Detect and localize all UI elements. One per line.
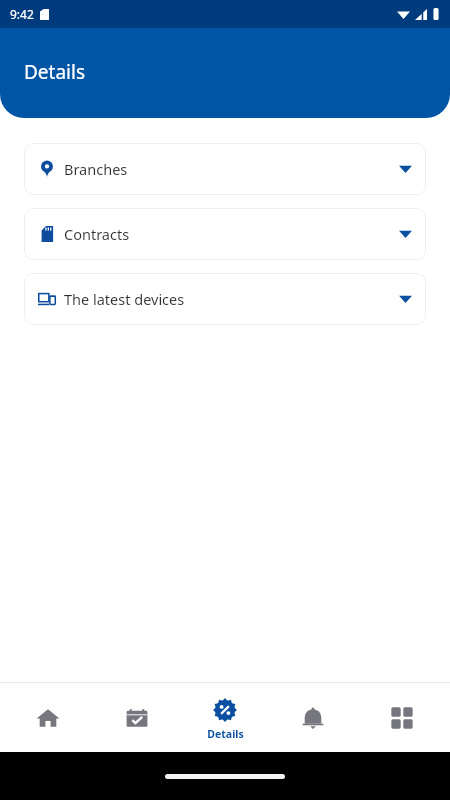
staticText: Branches [64, 159, 128, 179]
staticText: The latest devices [64, 289, 185, 309]
button[interactable]: Branches [24, 143, 426, 195]
staticText: 9:42 [10, 6, 34, 22]
button[interactable]: Notifications [273, 683, 353, 752]
button[interactable]: The latest devices [24, 273, 426, 325]
button[interactable]: More [362, 683, 442, 752]
button[interactable]: Details [185, 683, 265, 752]
button[interactable]: Contracts [24, 208, 426, 260]
staticText: Details [207, 727, 244, 741]
button[interactable]: Home [8, 683, 88, 752]
staticText: Details [24, 59, 86, 85]
button[interactable]: Calendar [97, 683, 177, 752]
staticText: Contracts [64, 224, 130, 244]
